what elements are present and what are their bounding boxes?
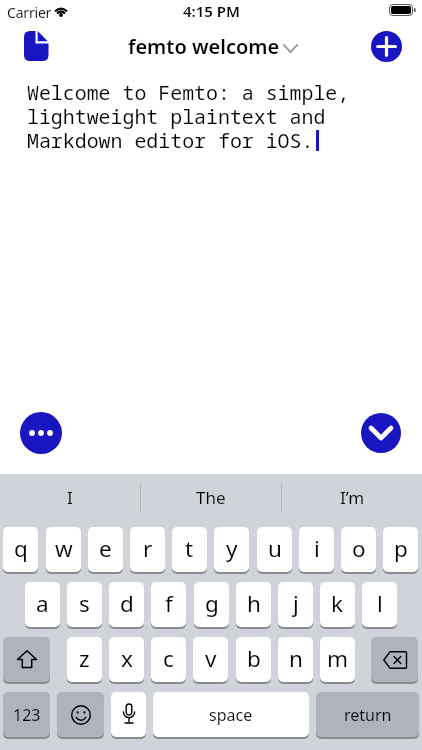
button[interactable]: a xyxy=(25,582,60,628)
staticText: return xyxy=(344,704,392,726)
button[interactable]: space xyxy=(153,692,309,738)
button[interactable]: v xyxy=(193,637,228,683)
button[interactable]: e xyxy=(88,527,123,573)
button[interactable]: s xyxy=(67,582,102,628)
button[interactable] xyxy=(24,31,49,61)
button[interactable]: I’m xyxy=(282,474,422,521)
button[interactable]: q xyxy=(3,527,38,573)
staticText: I’m xyxy=(340,486,365,509)
staticText: y xyxy=(226,533,238,564)
staticText: e xyxy=(99,533,112,564)
button[interactable]: f xyxy=(151,582,186,628)
staticText: 4:15 PM xyxy=(183,1,240,21)
button[interactable]: b xyxy=(236,637,271,683)
staticText: p xyxy=(394,533,408,564)
button[interactable] xyxy=(57,692,104,738)
button[interactable]: i xyxy=(299,527,334,573)
button[interactable]: j xyxy=(278,582,313,628)
button[interactable]: femto welcome xyxy=(128,33,295,60)
button[interactable] xyxy=(371,637,418,683)
button[interactable]: r xyxy=(130,527,165,573)
staticText: t xyxy=(185,533,194,564)
staticText: h xyxy=(247,588,261,619)
staticText: s xyxy=(79,588,90,619)
staticText: u xyxy=(268,533,282,564)
staticText: a xyxy=(36,588,49,619)
staticText: k xyxy=(331,588,344,619)
button[interactable]: w xyxy=(46,527,81,573)
button[interactable]: o xyxy=(341,527,376,573)
button[interactable]: g xyxy=(194,582,229,628)
button[interactable]: y xyxy=(214,527,249,573)
button[interactable]: l xyxy=(362,582,397,628)
button[interactable]: d xyxy=(109,582,144,628)
staticText: 123 xyxy=(13,704,41,726)
button[interactable] xyxy=(111,692,146,738)
button[interactable]: The xyxy=(141,474,281,521)
staticText: The xyxy=(196,486,226,509)
button[interactable]: z xyxy=(67,637,102,683)
staticText: r xyxy=(143,533,153,564)
staticText: m xyxy=(327,643,349,674)
button[interactable]: c xyxy=(151,637,186,683)
button[interactable] xyxy=(20,412,62,454)
staticText: n xyxy=(289,643,303,674)
button[interactable]: k xyxy=(320,582,355,628)
staticText: w xyxy=(55,533,73,564)
staticText: q xyxy=(14,533,28,564)
button[interactable]: x xyxy=(109,637,144,683)
staticText: j xyxy=(293,588,299,619)
button[interactable]: h xyxy=(236,582,271,628)
button[interactable] xyxy=(371,31,402,62)
staticText: femto welcome xyxy=(128,33,280,60)
staticText: c xyxy=(163,643,174,674)
staticText: g xyxy=(205,588,219,619)
button[interactable]: 123 xyxy=(3,692,50,738)
button[interactable]: u xyxy=(257,527,292,573)
staticText: Carrier xyxy=(7,3,52,22)
button[interactable]: I xyxy=(0,474,140,521)
staticText: d xyxy=(120,588,134,619)
staticText: x xyxy=(121,643,133,674)
staticText: space xyxy=(209,704,253,726)
button[interactable]: return xyxy=(316,692,419,738)
button[interactable]: p xyxy=(383,527,418,573)
button[interactable] xyxy=(361,413,401,453)
button[interactable] xyxy=(3,637,50,683)
staticText: o xyxy=(352,533,366,564)
staticText: I xyxy=(67,486,73,509)
staticText: z xyxy=(79,643,90,674)
staticText: i xyxy=(314,533,320,564)
staticText: Welcome to Femto: a simple, lightweight … xyxy=(27,79,350,153)
staticText: l xyxy=(377,588,383,619)
staticText: v xyxy=(205,643,217,674)
button[interactable]: m xyxy=(320,637,355,683)
button[interactable]: n xyxy=(278,637,313,683)
staticText: b xyxy=(247,643,261,674)
button[interactable]: t xyxy=(172,527,207,573)
staticText: f xyxy=(165,588,173,619)
